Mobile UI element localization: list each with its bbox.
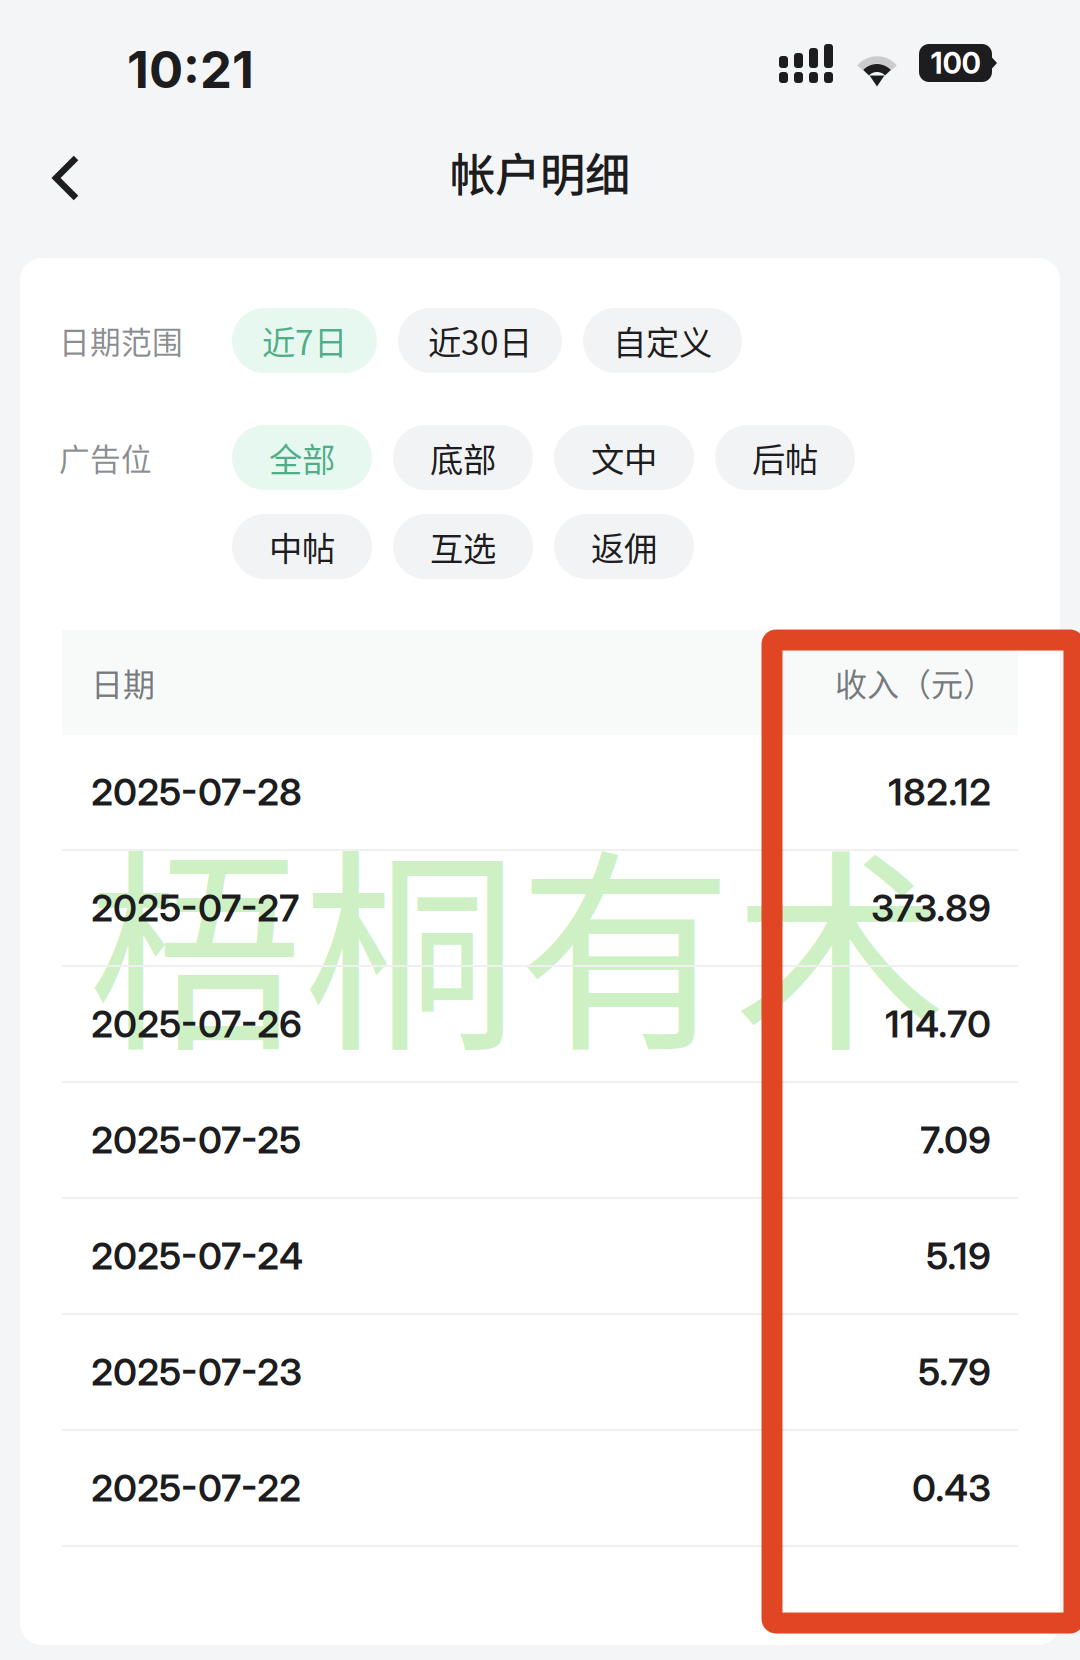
staticText: 日期范围: [59, 318, 183, 363]
button[interactable]: 后帖: [715, 425, 855, 490]
staticText: 帐户明细: [450, 139, 630, 205]
staticText: 2025-07-24: [91, 1233, 303, 1279]
button[interactable]: 近30日: [398, 308, 562, 373]
staticText: 100: [930, 45, 980, 81]
staticText: 全部: [269, 433, 335, 482]
staticText: 返佣: [591, 522, 657, 571]
staticText: 2025-07-22: [91, 1465, 301, 1511]
staticText: 2025-07-23: [91, 1349, 302, 1395]
staticText: 互选: [430, 522, 496, 571]
staticText: 114.70: [885, 1001, 991, 1047]
staticText: 近7日: [262, 316, 347, 365]
staticText: 日期: [91, 659, 155, 706]
staticText: 收入（元）: [835, 659, 995, 706]
button[interactable]: 近7日: [232, 308, 377, 373]
staticText: 自定义: [613, 316, 712, 365]
staticText: 7.09: [920, 1117, 991, 1163]
staticText: 文中: [591, 433, 657, 482]
staticText: 近30日: [428, 316, 532, 365]
button[interactable]: 全部: [232, 425, 372, 490]
staticText: 2025-07-27: [91, 885, 299, 931]
staticText: 2025-07-26: [91, 1001, 302, 1047]
button[interactable]: Back: [0, 142, 130, 236]
staticText: 5.19: [926, 1233, 991, 1279]
staticText: 5.79: [918, 1349, 991, 1395]
staticText: 182.12: [888, 769, 991, 815]
button[interactable]: 互选: [393, 514, 533, 579]
staticText: 373.89: [871, 885, 991, 931]
staticText: 广告位: [59, 435, 152, 480]
button[interactable]: 返佣: [554, 514, 694, 579]
staticText: 2025-07-25: [91, 1117, 301, 1163]
button[interactable]: 底部: [393, 425, 533, 490]
staticText: 10:21: [127, 39, 254, 100]
staticText: 后帖: [752, 433, 818, 482]
button[interactable]: 自定义: [583, 308, 742, 373]
button[interactable]: 文中: [554, 425, 694, 490]
button[interactable]: 中帖: [232, 514, 372, 579]
staticText: 2025-07-28: [91, 769, 302, 815]
staticText: 中帖: [269, 522, 335, 571]
staticText: 梧桐有术: [88, 783, 948, 1094]
staticText: 底部: [430, 433, 496, 482]
staticText: 0.43: [912, 1465, 991, 1511]
